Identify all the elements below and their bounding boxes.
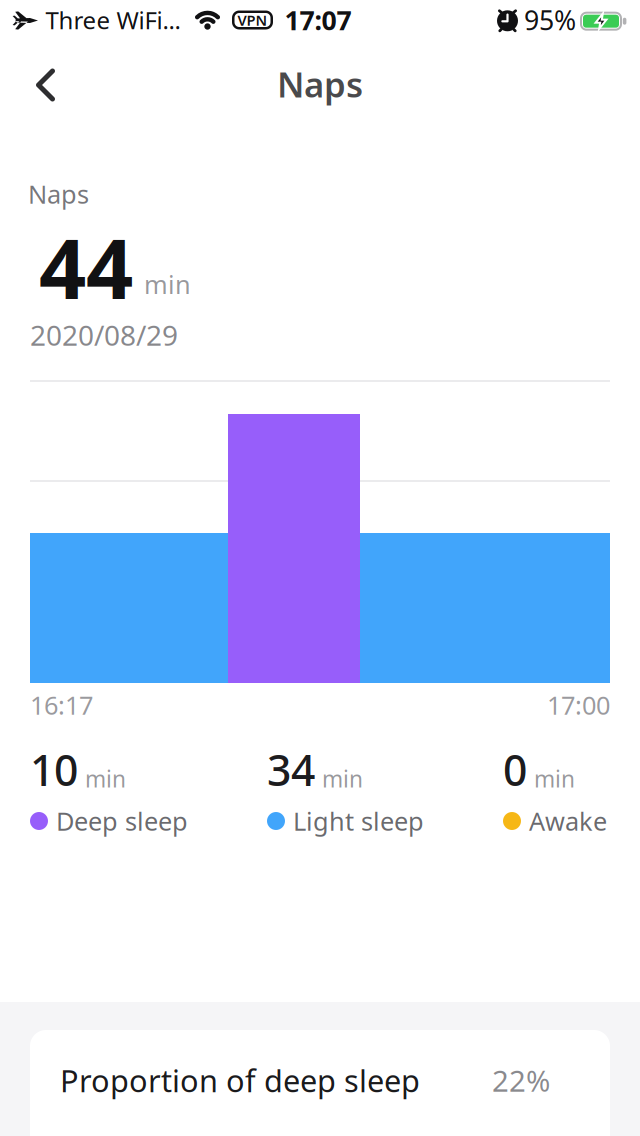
button[interactable]: Proportion of deep sleep xyxy=(0,1060,640,1101)
staticText: 10 xyxy=(30,741,78,798)
staticText: Three WiFi... xyxy=(45,4,180,36)
staticText: min xyxy=(534,764,575,794)
staticText: 17:00 xyxy=(547,688,610,722)
staticText: Naps xyxy=(277,61,363,107)
staticText: 95% xyxy=(524,2,576,38)
button[interactable] xyxy=(23,63,67,107)
staticText: 17:07 xyxy=(284,2,351,38)
staticText: 0 xyxy=(503,741,527,798)
staticText: 16:17 xyxy=(30,688,93,722)
staticText: Awake xyxy=(529,804,607,838)
staticText: 34 xyxy=(267,741,315,798)
staticText: min xyxy=(144,267,191,301)
staticText: Deep sleep xyxy=(56,804,188,838)
staticText: Proportion of deep sleep xyxy=(60,1060,420,1101)
staticText: 22% xyxy=(492,1061,550,1100)
staticText: Naps xyxy=(28,177,89,211)
staticText: min xyxy=(322,764,363,794)
staticText: Light sleep xyxy=(293,804,424,838)
staticText: 2020/08/29 xyxy=(30,316,178,354)
staticText: 44 xyxy=(39,212,133,322)
staticText: VPN xyxy=(237,10,267,30)
staticText: min xyxy=(85,764,126,794)
